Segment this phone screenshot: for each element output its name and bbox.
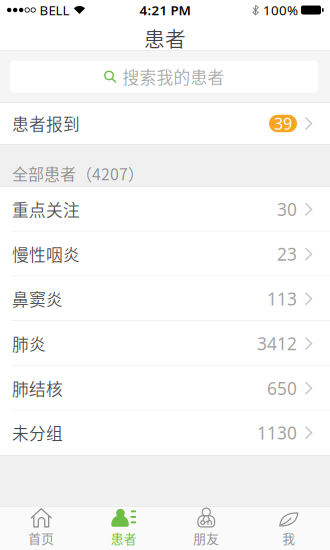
- staticText: 4:21 PM: [139, 1, 190, 19]
- staticText: 3412: [257, 332, 297, 355]
- staticText: 肺炎: [12, 331, 46, 355]
- staticText: 朋友: [193, 529, 219, 547]
- button[interactable]: 患者: [82, 506, 165, 549]
- staticText: 慢性咽炎: [12, 242, 80, 266]
- button[interactable]: 朋友: [165, 506, 247, 549]
- staticText: 650: [267, 377, 297, 400]
- staticText: 30: [277, 198, 297, 221]
- staticText: 全部患者（4207）: [12, 162, 144, 185]
- staticText: 113: [267, 287, 297, 310]
- staticText: 患者报到: [12, 111, 80, 135]
- staticText: 鼻窦炎: [12, 287, 63, 311]
- staticText: 肺结核: [12, 376, 63, 400]
- button[interactable]: 鼻窦炎: [0, 276, 330, 321]
- button[interactable]: 肺炎: [0, 321, 330, 366]
- button[interactable]: 重点关注: [0, 187, 330, 232]
- staticText: BELL: [39, 1, 69, 19]
- staticText: 1130: [257, 421, 297, 444]
- button[interactable]: 患者报到: [0, 103, 330, 144]
- button[interactable]: 首页: [0, 506, 82, 549]
- staticText: 23: [277, 242, 297, 265]
- staticText: 未分组: [12, 421, 63, 445]
- staticText: 重点关注: [12, 197, 80, 221]
- button[interactable]: 我: [247, 506, 330, 549]
- staticText: 我: [282, 529, 295, 547]
- button[interactable]: 搜索我的患者: [0, 60, 330, 92]
- staticText: 首页: [28, 529, 54, 547]
- button[interactable]: 慢性咽炎: [0, 232, 330, 276]
- staticText: 100%: [263, 1, 298, 19]
- button[interactable]: 肺结核: [0, 366, 330, 410]
- button[interactable]: 未分组: [0, 410, 330, 455]
- staticText: 患者: [144, 23, 186, 53]
- staticText: 39: [274, 113, 292, 134]
- staticText: 搜索我的患者: [122, 64, 224, 88]
- staticText: 患者: [111, 529, 137, 547]
